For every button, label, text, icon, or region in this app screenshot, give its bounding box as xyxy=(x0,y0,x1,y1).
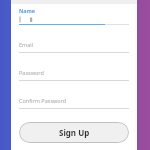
button[interactable]: Email xyxy=(19,35,129,53)
staticText: Name xyxy=(19,7,36,14)
button[interactable]: Confirm Password xyxy=(19,91,129,109)
staticText: Email xyxy=(19,41,34,48)
staticText: Confirm Password xyxy=(19,97,67,104)
staticText: Password xyxy=(19,69,44,76)
staticText: Sign Up xyxy=(59,127,90,138)
button[interactable]: Sign Up xyxy=(19,122,129,143)
button[interactable]: Name xyxy=(19,7,129,25)
button[interactable]: Password xyxy=(19,63,129,81)
